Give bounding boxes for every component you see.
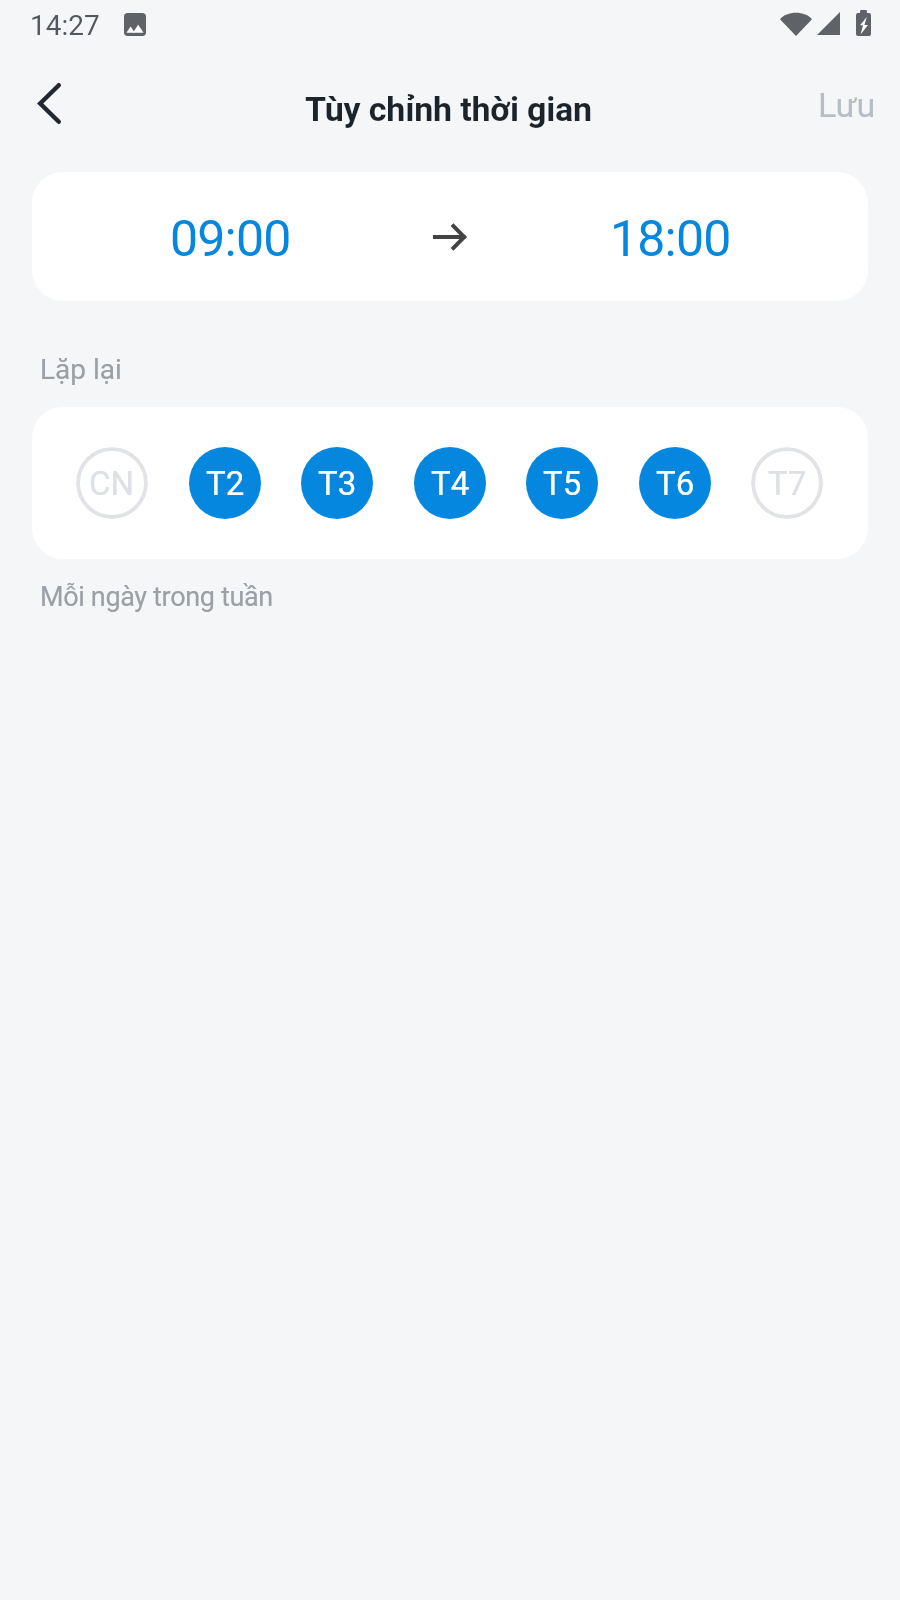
staticText: T6 bbox=[656, 464, 695, 503]
button[interactable]: T6 bbox=[639, 447, 711, 519]
button[interactable]: T3 bbox=[301, 447, 373, 519]
staticText: CN bbox=[89, 464, 135, 503]
staticText: 18:00 bbox=[610, 210, 731, 269]
staticText: T3 bbox=[318, 464, 357, 503]
button[interactable]: CN bbox=[76, 447, 148, 519]
button[interactable]: T5 bbox=[526, 447, 598, 519]
button[interactable]: 09:00 bbox=[32, 172, 428, 301]
staticText: 14:27 bbox=[30, 9, 100, 42]
button[interactable]: Lưu bbox=[799, 77, 895, 133]
staticText: Tùy chỉnh thời gian bbox=[305, 89, 592, 129]
staticText: T4 bbox=[431, 464, 470, 503]
button[interactable]: T2 bbox=[189, 447, 261, 519]
staticText: 09:00 bbox=[170, 210, 291, 269]
button[interactable]: 18:00 bbox=[472, 172, 868, 301]
staticText: T5 bbox=[543, 464, 582, 503]
button[interactable]: Back bbox=[20, 75, 78, 131]
staticText: Lặp lại bbox=[40, 353, 122, 386]
staticText: T2 bbox=[206, 464, 245, 503]
staticText: T7 bbox=[768, 464, 807, 503]
staticText: Mỗi ngày trong tuần bbox=[40, 581, 273, 613]
staticText: Lưu bbox=[818, 85, 876, 125]
button[interactable]: T4 bbox=[414, 447, 486, 519]
button[interactable]: T7 bbox=[751, 447, 823, 519]
